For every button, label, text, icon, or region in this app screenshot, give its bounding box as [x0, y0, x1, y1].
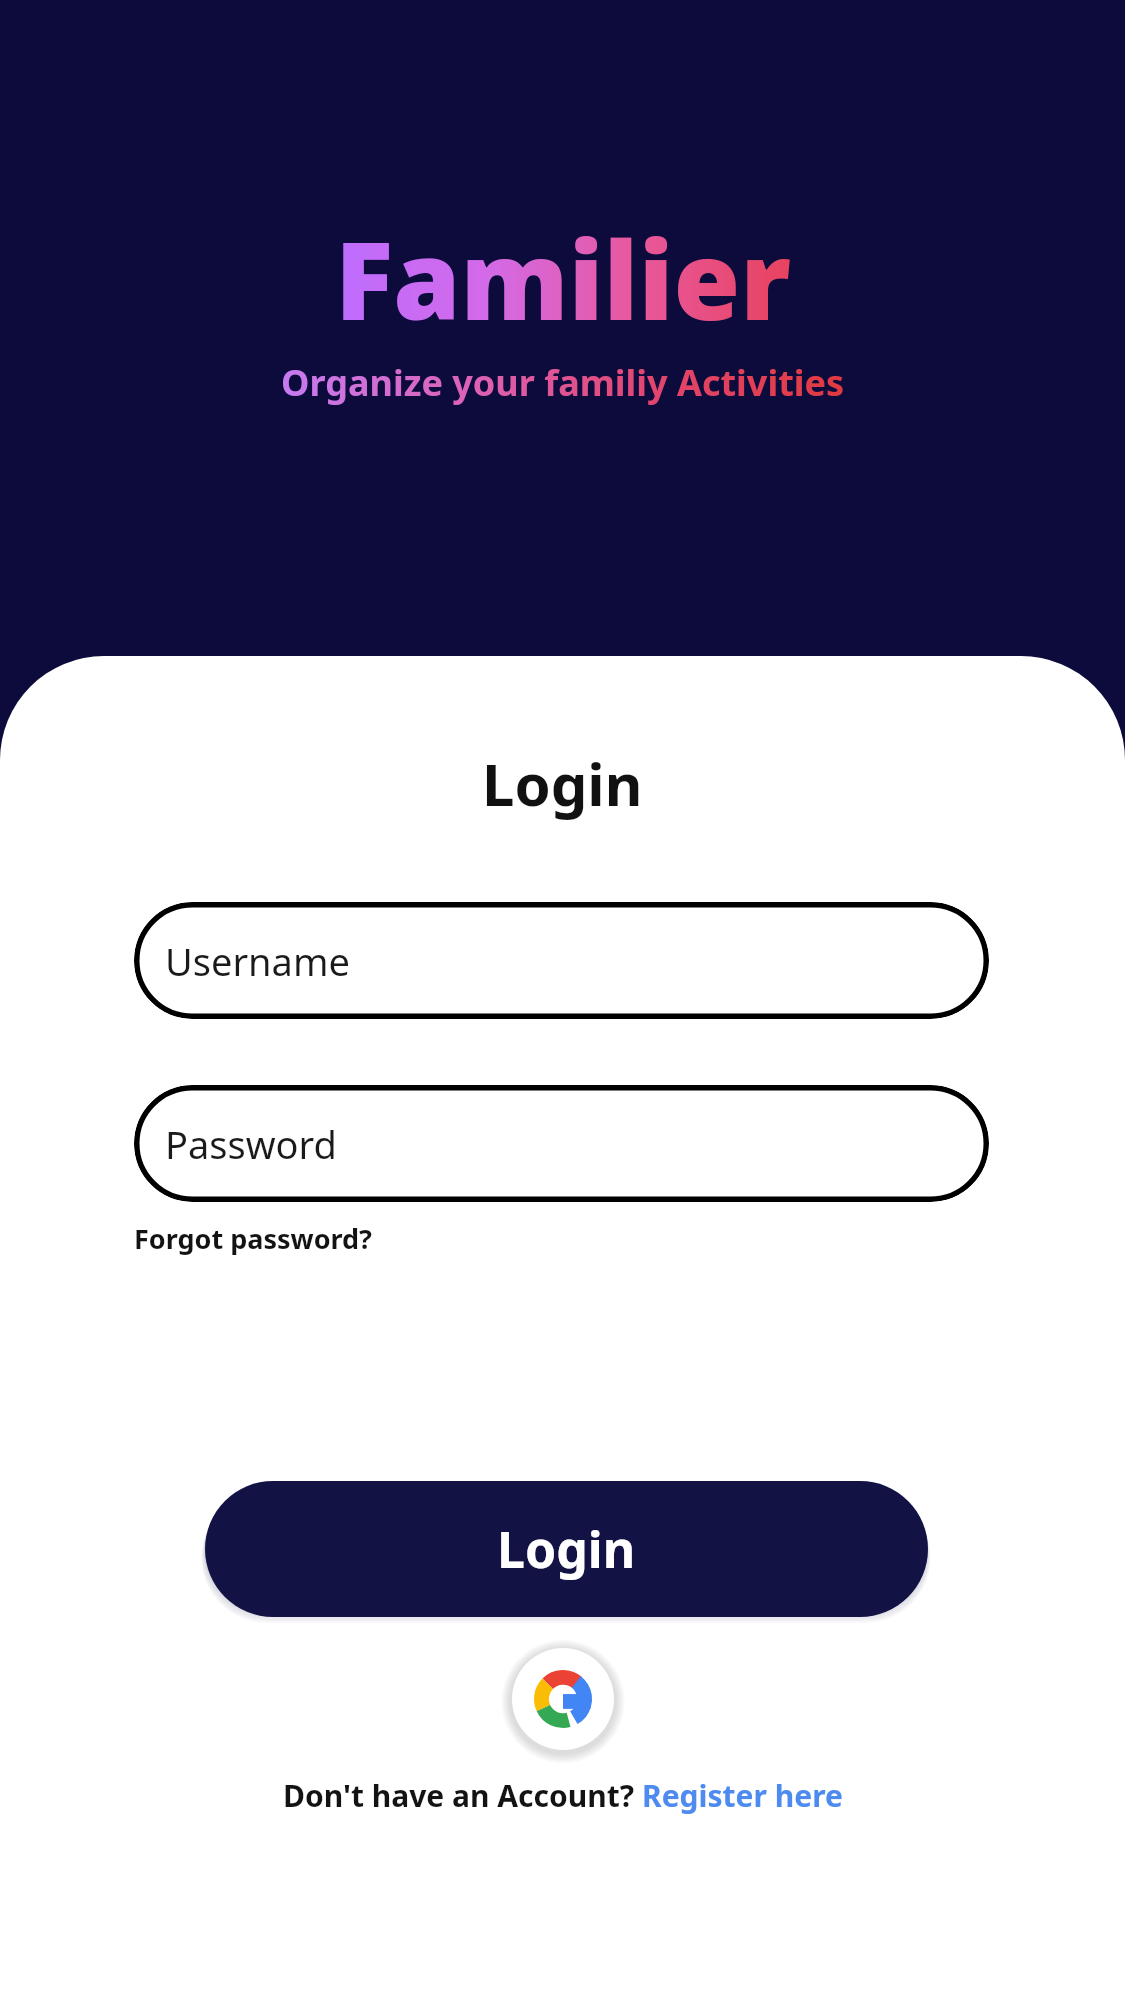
- staticText: Don't have an Account?: [283, 1775, 642, 1816]
- button[interactable]: Forgot password?: [134, 1216, 372, 1261]
- button[interactable]: Sign in with Google: [509, 1645, 617, 1753]
- staticText: Password: [165, 1118, 337, 1170]
- button[interactable]: Password: [134, 1085, 989, 1202]
- button[interactable]: Username: [134, 902, 989, 1019]
- staticText: Login: [497, 1515, 636, 1583]
- staticText: Login: [482, 744, 643, 823]
- staticText: Forgot password?: [134, 1220, 372, 1257]
- button[interactable]: Don't have an Account?: [283, 1775, 843, 1816]
- staticText: Register here: [642, 1775, 843, 1816]
- staticText: Familier: [335, 205, 791, 352]
- staticText: Organize your familiy Activities: [281, 358, 845, 407]
- staticText: Username: [165, 935, 350, 987]
- button[interactable]: Login: [205, 1481, 928, 1617]
